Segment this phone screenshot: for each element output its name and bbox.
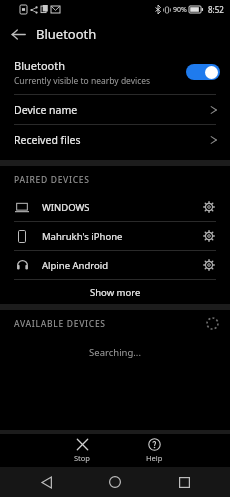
button[interactable]: Device name xyxy=(0,95,230,124)
button[interactable]: Back xyxy=(0,18,36,50)
staticText: Bluetooth xyxy=(14,58,66,73)
staticText: 90% xyxy=(173,5,187,15)
button[interactable]: Settings for Mahrukh's iPhone xyxy=(199,226,219,246)
button[interactable]: Home xyxy=(93,467,137,497)
staticText: Device name xyxy=(14,103,210,117)
button[interactable]: Stop xyxy=(46,434,118,467)
staticText: Currently visible to nearby devices xyxy=(14,75,151,87)
button[interactable]: Recents xyxy=(162,467,206,497)
button[interactable]: Help xyxy=(118,434,190,467)
button[interactable]: Bluetooth toggle xyxy=(186,64,220,80)
staticText: Received files xyxy=(14,133,210,147)
staticText: Bluetooth xyxy=(36,25,97,43)
button[interactable]: WINDOWS xyxy=(0,193,230,221)
staticText: Alpine Android xyxy=(42,259,199,272)
button[interactable]: Alpine Android xyxy=(0,251,230,279)
staticText: Searching... xyxy=(89,346,141,359)
staticText: Help xyxy=(146,453,163,463)
staticText: PAIRED DEVICES xyxy=(14,174,219,186)
staticText: 8:52 xyxy=(208,4,224,15)
staticText: Show more xyxy=(90,286,141,299)
button[interactable]: Settings for WINDOWS xyxy=(199,197,219,217)
button[interactable]: Show more xyxy=(0,280,230,304)
staticText: Stop xyxy=(74,453,90,463)
staticText: AVAILABLE DEVICES xyxy=(14,318,206,330)
button[interactable]: Bluetooth xyxy=(0,50,230,94)
staticText: WINDOWS xyxy=(42,201,199,214)
button[interactable]: Settings for Alpine Android xyxy=(199,255,219,275)
button[interactable]: Received files xyxy=(0,125,230,154)
button[interactable]: Back xyxy=(25,467,69,497)
staticText: Mahrukh's iPhone xyxy=(42,230,199,243)
button[interactable]: Mahrukh's iPhone xyxy=(0,222,230,250)
